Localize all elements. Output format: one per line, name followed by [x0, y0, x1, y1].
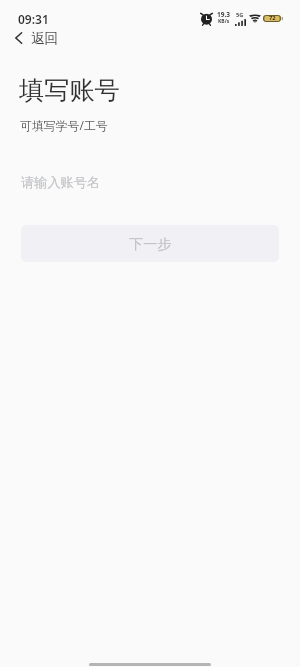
staticText: 19.3 [217, 10, 230, 19]
staticText: 72 [269, 14, 276, 22]
button[interactable]: Back [0, 27, 67, 49]
staticText: 填写账号 [19, 75, 120, 107]
button[interactable]: 请输入账号名 [21, 169, 279, 195]
staticText: 可填写学号/工号 [20, 117, 108, 133]
staticText: KB/s [218, 18, 230, 25]
staticText: 请输入账号名 [21, 174, 101, 191]
staticText: 5G [236, 11, 244, 19]
other: Back [15, 32, 22, 44]
staticText: 下一步 [129, 235, 172, 253]
button[interactable]: 下一步 [21, 225, 279, 262]
staticText: 返回 [31, 30, 59, 47]
staticText: 09:31 [18, 11, 49, 27]
